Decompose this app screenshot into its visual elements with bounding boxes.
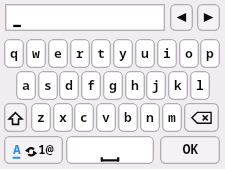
staticText: p bbox=[206, 44, 214, 62]
button[interactable]: i bbox=[157, 39, 177, 68]
staticText: q bbox=[10, 44, 18, 62]
button[interactable]: Space bbox=[66, 136, 154, 164]
button[interactable]: Move cursor left bbox=[170, 4, 193, 31]
button[interactable]: w bbox=[26, 39, 46, 68]
staticText: m bbox=[168, 108, 176, 126]
staticText: d bbox=[65, 76, 73, 94]
button[interactable]: Move cursor right bbox=[197, 4, 220, 31]
staticText: b bbox=[124, 108, 132, 126]
staticText: l bbox=[196, 76, 204, 94]
button[interactable] bbox=[5, 4, 165, 31]
button[interactable]: e bbox=[48, 39, 68, 68]
button[interactable]: b bbox=[118, 103, 138, 132]
staticText: t bbox=[97, 44, 105, 62]
button[interactable]: l bbox=[190, 71, 210, 100]
button[interactable]: y bbox=[113, 39, 133, 68]
staticText: e bbox=[54, 44, 62, 62]
staticText: OK bbox=[182, 140, 199, 158]
button[interactable]: Shift bbox=[4, 103, 27, 132]
staticText: x bbox=[59, 108, 67, 126]
staticText: g bbox=[109, 76, 117, 94]
staticText: w bbox=[32, 44, 40, 62]
staticText: r bbox=[76, 44, 84, 62]
button[interactable]: a bbox=[16, 71, 36, 100]
staticText: y bbox=[119, 44, 127, 62]
staticText: u bbox=[141, 44, 149, 62]
button[interactable]: c bbox=[74, 103, 94, 132]
staticText: v bbox=[102, 108, 110, 126]
staticText: i bbox=[163, 44, 171, 62]
staticText: f bbox=[87, 76, 95, 94]
button[interactable]: u bbox=[135, 39, 155, 68]
staticText: j bbox=[152, 76, 160, 94]
staticText: c bbox=[80, 108, 88, 126]
button[interactable]: s bbox=[38, 71, 58, 100]
button[interactable]: n bbox=[140, 103, 160, 132]
button[interactable]: p bbox=[200, 39, 220, 68]
button[interactable]: k bbox=[168, 71, 188, 100]
staticText: A bbox=[13, 140, 21, 158]
button[interactable]: h bbox=[125, 71, 145, 100]
staticText: k bbox=[174, 76, 182, 94]
button[interactable]: t bbox=[91, 39, 111, 68]
button[interactable]: q bbox=[4, 39, 24, 68]
staticText: n bbox=[146, 108, 154, 126]
button[interactable]: o bbox=[179, 39, 199, 68]
button[interactable]: OK bbox=[160, 136, 220, 164]
button[interactable]: f bbox=[81, 71, 101, 100]
staticText: h bbox=[131, 76, 139, 94]
staticText: z bbox=[37, 108, 45, 126]
button[interactable]: r bbox=[70, 39, 90, 68]
button[interactable]: m bbox=[162, 103, 182, 132]
staticText: s bbox=[44, 76, 52, 94]
staticText: o bbox=[185, 44, 193, 62]
button[interactable]: z bbox=[31, 103, 51, 132]
button[interactable]: j bbox=[146, 71, 166, 100]
button[interactable]: Switch input mode bbox=[4, 136, 63, 164]
button[interactable]: Backspace bbox=[184, 103, 219, 132]
button[interactable]: d bbox=[59, 71, 79, 100]
button[interactable]: g bbox=[103, 71, 123, 100]
staticText: 1@ bbox=[38, 140, 54, 158]
button[interactable]: x bbox=[53, 103, 73, 132]
button[interactable]: v bbox=[96, 103, 116, 132]
staticText: a bbox=[22, 76, 30, 94]
